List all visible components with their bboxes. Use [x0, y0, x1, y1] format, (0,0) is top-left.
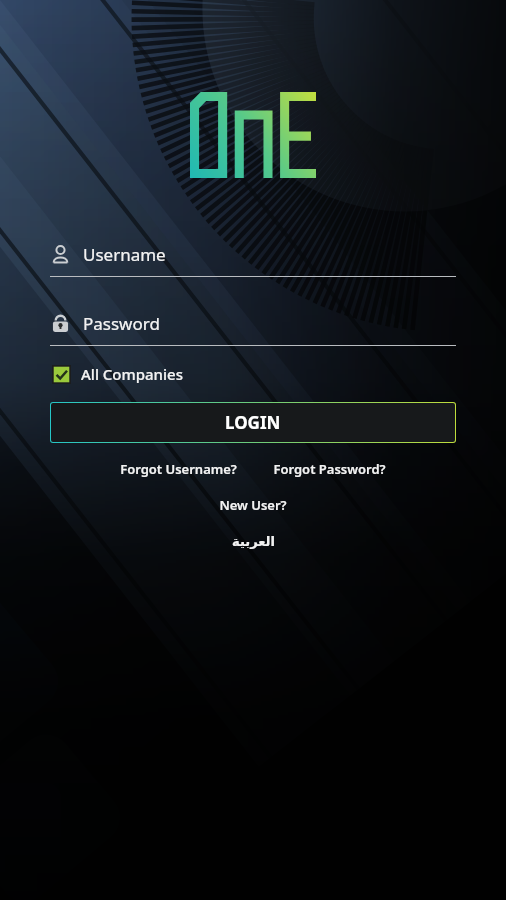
staticText: LOGIN [225, 411, 281, 434]
button[interactable]: New User? [215, 493, 291, 517]
staticText: New User? [219, 496, 287, 514]
button[interactable]: All Companies [50, 360, 185, 388]
staticText: All Companies [81, 364, 183, 384]
staticText: Forgot Password? [273, 460, 386, 478]
button[interactable]: Username [50, 243, 456, 277]
button[interactable]: Forgot Password? [269, 457, 390, 481]
staticText: العربية [232, 534, 275, 549]
staticText: Username [83, 243, 166, 266]
button[interactable]: LOGIN [50, 402, 456, 443]
button[interactable]: العربية [228, 531, 279, 552]
staticText: Password [83, 312, 160, 335]
button[interactable]: Password [50, 312, 456, 346]
staticText: Forgot Username? [120, 460, 237, 478]
button[interactable]: Forgot Username? [116, 457, 241, 481]
